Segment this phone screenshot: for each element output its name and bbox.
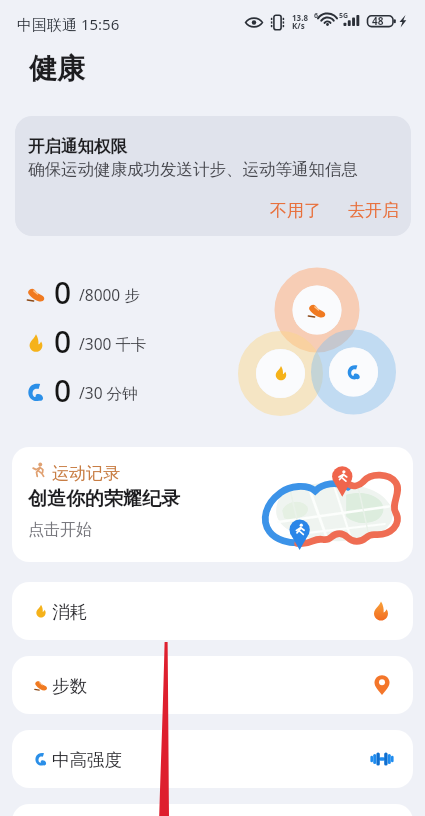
- staticText: 6: [314, 11, 319, 21]
- staticText: 48: [372, 14, 384, 28]
- staticText: 健康: [29, 51, 85, 86]
- staticText: 不用了: [270, 200, 321, 221]
- staticText: /8000 步: [79, 284, 140, 305]
- staticText: 确保运动健康成功发送计步、运动等通知信息: [28, 159, 358, 180]
- button[interactable]: 运动记录: [12, 447, 413, 562]
- staticText: /300 千卡: [79, 333, 147, 354]
- staticText: 去开启: [348, 200, 399, 221]
- button[interactable]: 去开启: [340, 194, 407, 227]
- button[interactable]: 不用了: [262, 194, 329, 227]
- staticText: 13.8: [292, 12, 308, 23]
- staticText: 中高强度: [52, 749, 122, 771]
- staticText: 创造你的荣耀纪录: [28, 487, 180, 511]
- staticText: 消耗: [52, 601, 87, 623]
- staticText: 开启通知权限: [28, 136, 127, 157]
- button[interactable]: [12, 804, 413, 816]
- staticText: K/s: [292, 20, 305, 31]
- staticText: 0: [54, 272, 72, 313]
- button[interactable]: 中高强度: [12, 730, 413, 788]
- staticText: 点击开始: [28, 520, 92, 540]
- button[interactable]: 步数: [12, 656, 413, 714]
- staticText: 5G: [339, 11, 349, 21]
- staticText: 中国联通 15:56: [17, 14, 120, 34]
- staticText: 步数: [52, 675, 87, 697]
- staticText: 0: [54, 321, 72, 362]
- button[interactable]: 消耗: [12, 582, 413, 640]
- staticText: /30 分钟: [79, 382, 138, 403]
- staticText: 运动记录: [52, 463, 120, 484]
- button[interactable]: 开启通知权限: [15, 116, 411, 236]
- staticText: 0: [54, 370, 72, 411]
